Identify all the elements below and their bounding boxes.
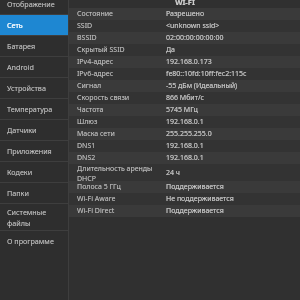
staticText: Длительность аренды [77, 164, 153, 174]
staticText: Wi-Fi Direct [77, 206, 115, 216]
staticText: 866 Мбит/с [166, 93, 205, 103]
staticText: Не поддерживается [166, 194, 234, 204]
button[interactable]: Маска сети [69, 128, 300, 140]
button[interactable]: Отображение [0, 0, 68, 14]
staticText: Частота [77, 105, 104, 115]
button[interactable]: Датчики [0, 120, 68, 140]
staticText: Системные [7, 207, 47, 217]
button[interactable]: Сеть [0, 15, 68, 35]
button[interactable]: Сигнал [69, 80, 300, 92]
staticText: 02:00:00:00:00:00 [166, 33, 224, 43]
button[interactable]: Скорость связи [69, 92, 300, 104]
button[interactable]: Длительность аренды [69, 164, 300, 181]
button[interactable]: Состояние [69, 8, 300, 20]
staticText: Папки [7, 188, 29, 198]
staticText: Кодеки [7, 167, 33, 177]
staticText: 192.168.0.173 [166, 57, 212, 67]
staticText: Скрытый SSID [77, 45, 125, 55]
staticText: Да [166, 45, 175, 55]
button[interactable]: DNS1 [69, 140, 300, 152]
staticText: 192.168.0.1 [166, 117, 204, 127]
button[interactable]: О программе [0, 231, 68, 251]
button[interactable]: Температура [0, 99, 68, 119]
staticText: Приложения [7, 146, 52, 156]
button[interactable]: Системные [0, 204, 68, 230]
staticText: Сигнал [77, 81, 102, 91]
button[interactable]: Частота [69, 104, 300, 116]
button[interactable]: DNS2 [69, 152, 300, 164]
button[interactable]: SSID [69, 20, 300, 32]
button[interactable]: Wi-Fi Direct [69, 205, 300, 217]
button[interactable]: Батарея [0, 36, 68, 56]
staticText: DHCP [77, 174, 96, 181]
button[interactable]: Скрытый SSID [69, 44, 300, 56]
staticText: О программе [7, 236, 54, 246]
button[interactable]: Полоса 5 ГГц [69, 181, 300, 193]
staticText: Поддерживается [166, 206, 224, 216]
button[interactable]: Кодеки [0, 162, 68, 182]
staticText: файлы [7, 218, 31, 228]
staticText: 192.168.0.1 [166, 141, 204, 151]
button[interactable]: Приложения [0, 141, 68, 161]
staticText: <unknown ssid> [166, 21, 220, 31]
button[interactable]: Android [0, 57, 68, 77]
staticText: Состояние [77, 9, 113, 19]
staticText: SSID [77, 21, 93, 31]
button[interactable]: Устройства [0, 78, 68, 98]
staticText: DNS2 [77, 153, 96, 163]
staticText: Android [7, 62, 34, 72]
staticText: IPv6-адрес [77, 69, 114, 79]
button[interactable]: IPv6-адрес [69, 68, 300, 80]
staticText: DNS1 [77, 141, 96, 151]
staticText: Сеть [7, 20, 23, 30]
button[interactable]: IPv4-адрес [69, 56, 300, 68]
button[interactable]: Папки [0, 183, 68, 203]
staticText: Устройства [7, 83, 46, 93]
staticText: 255.255.255.0 [166, 129, 212, 139]
staticText: -55 дБм (Идеальный) [166, 81, 238, 91]
staticText: Отображение [7, 0, 55, 9]
button[interactable]: Wi-Fi Aware [69, 193, 300, 205]
staticText: Скорость связи [77, 93, 130, 103]
staticText: Полоса 5 ГГц [77, 182, 121, 192]
staticText: Датчики [7, 125, 37, 135]
staticText: Маска сети [77, 129, 115, 139]
staticText: IPv4-адрес [77, 57, 114, 67]
staticText: Поддерживается [166, 182, 224, 192]
staticText: 5745 МГц [166, 105, 198, 115]
staticText: 192.168.0.1 [166, 153, 204, 163]
staticText: Батарея [7, 41, 36, 51]
button[interactable]: BSSID [69, 32, 300, 44]
staticText: Температура [7, 104, 53, 114]
staticText: Шлюз [77, 117, 98, 127]
button[interactable]: Шлюз [69, 116, 300, 128]
staticText: BSSID [77, 33, 97, 43]
staticText: 24 ч [166, 168, 180, 178]
staticText: WI-FI [175, 0, 195, 7]
staticText: fe80::10fd:10ff:fec2:115c [166, 69, 247, 79]
staticText: Разрешено [166, 9, 205, 19]
staticText: Wi-Fi Aware [77, 194, 116, 204]
